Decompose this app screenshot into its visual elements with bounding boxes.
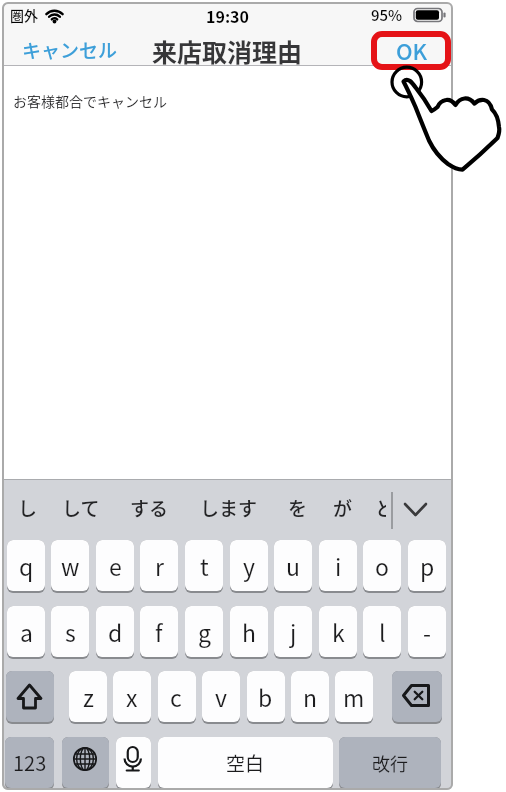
staticText: g xyxy=(198,615,211,648)
staticText: q xyxy=(19,549,34,582)
staticText: s xyxy=(65,615,76,648)
staticText: t xyxy=(200,549,209,582)
staticText: o xyxy=(375,549,389,582)
staticText: 圏外 xyxy=(10,5,38,25)
staticText: c xyxy=(170,680,182,713)
staticText: l xyxy=(379,615,386,648)
staticText: e xyxy=(109,549,122,582)
staticText: - xyxy=(423,615,431,648)
staticText: 改行 xyxy=(372,750,408,776)
staticText: v xyxy=(215,680,227,713)
staticText: キャンセル xyxy=(22,36,118,64)
staticText: し xyxy=(18,494,38,522)
staticText: f xyxy=(155,615,163,648)
staticText: b xyxy=(258,680,273,713)
staticText: 95% xyxy=(371,4,403,26)
staticText: z xyxy=(83,680,94,713)
staticText: が xyxy=(333,494,353,522)
staticText: 19:30 xyxy=(206,4,249,26)
staticText: d xyxy=(108,615,123,648)
staticText: n xyxy=(303,680,318,713)
staticText: y xyxy=(243,549,255,582)
staticText: と xyxy=(375,494,386,522)
staticText: r xyxy=(155,549,164,582)
staticText: u xyxy=(286,549,300,582)
staticText: 123 xyxy=(13,748,47,777)
staticText: お客様都合でキャンセル xyxy=(13,91,167,111)
staticText: します xyxy=(200,494,258,522)
staticText: i xyxy=(335,549,342,582)
staticText: x xyxy=(126,680,138,713)
staticText: k xyxy=(332,615,345,648)
staticText: a xyxy=(20,615,33,648)
staticText: h xyxy=(242,615,256,648)
staticText: する xyxy=(130,494,169,522)
staticText: p xyxy=(420,549,435,582)
staticText: 来店取消理由 xyxy=(152,33,303,65)
staticText: 空白 xyxy=(226,749,265,777)
staticText: m xyxy=(343,680,365,713)
staticText: j xyxy=(290,615,297,648)
staticText: して xyxy=(62,494,100,522)
staticText: を xyxy=(288,494,308,522)
staticText: OK xyxy=(396,34,428,64)
staticText: w xyxy=(61,549,80,582)
